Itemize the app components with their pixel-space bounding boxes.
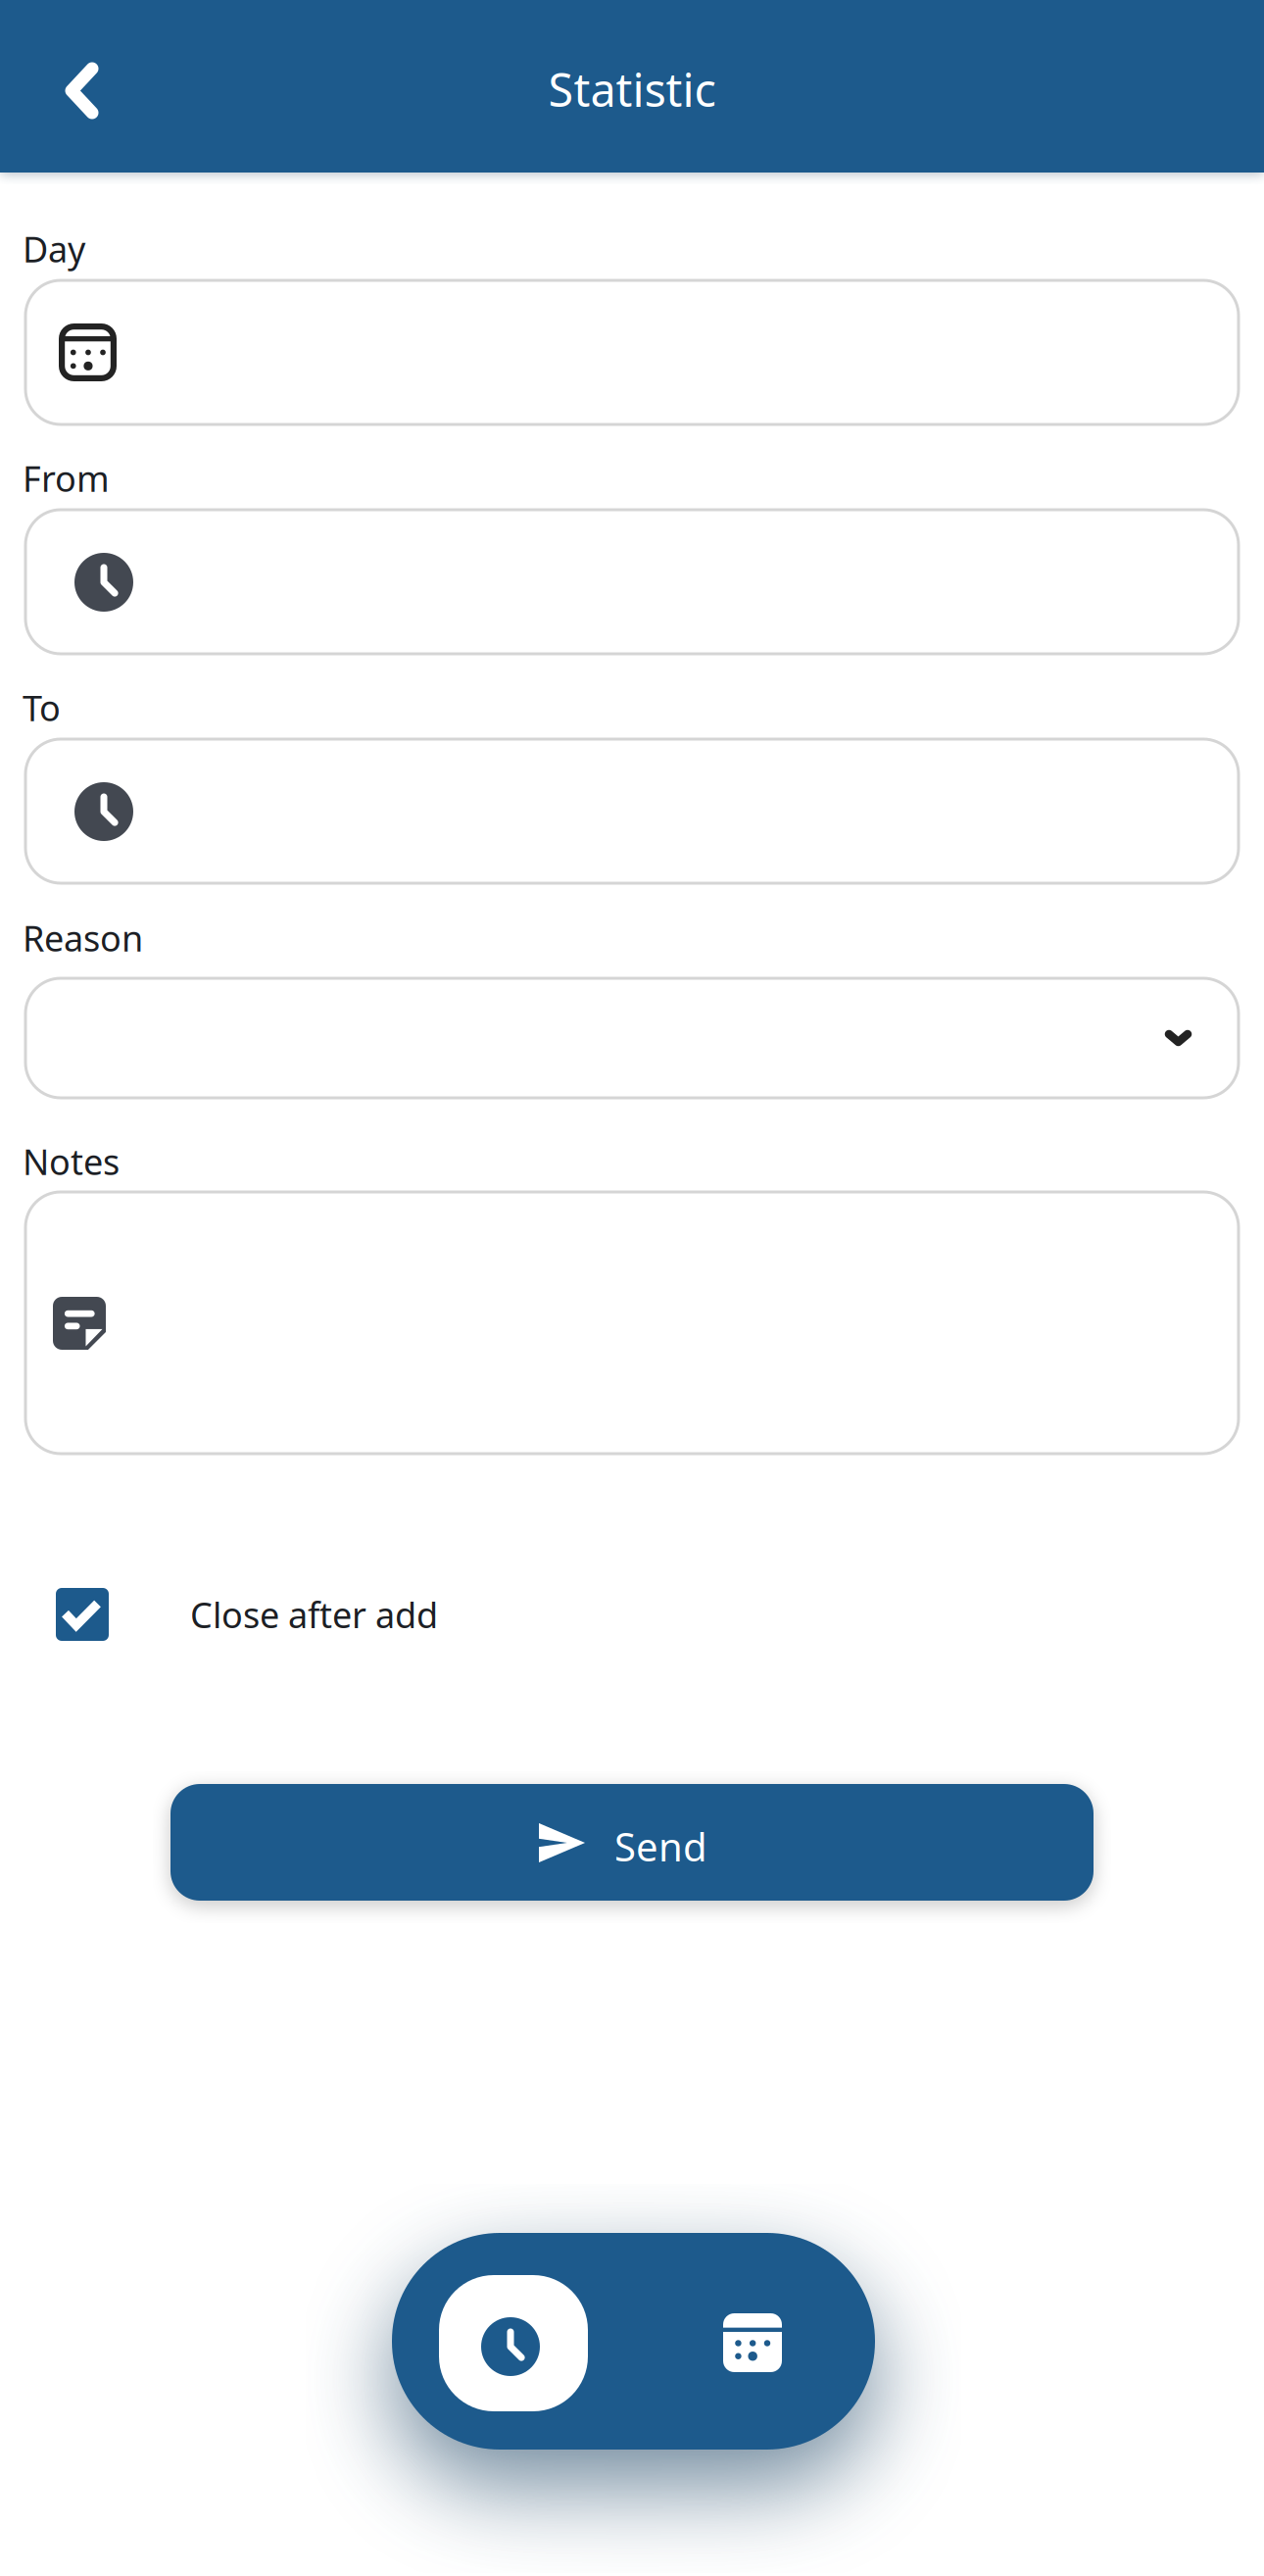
staticText: From (23, 455, 110, 502)
staticText: Day (23, 225, 85, 272)
button[interactable]: Time (439, 2275, 588, 2411)
button[interactable] (25, 978, 1239, 1098)
button[interactable]: Send (170, 1784, 1094, 1901)
button[interactable] (25, 510, 1239, 654)
button[interactable] (25, 1192, 1239, 1454)
staticText: To (23, 684, 61, 731)
button[interactable] (25, 739, 1239, 883)
staticText: Notes (23, 1138, 120, 1185)
button[interactable]: Close after add (56, 1588, 742, 1641)
staticText: Send (614, 1820, 707, 1872)
button[interactable] (25, 280, 1239, 424)
staticText: Close after add (190, 1591, 438, 1638)
button[interactable]: Calendar (694, 2275, 811, 2411)
button[interactable]: Back (38, 35, 125, 146)
staticText: Reason (23, 915, 143, 961)
staticText: Statistic (548, 59, 716, 120)
